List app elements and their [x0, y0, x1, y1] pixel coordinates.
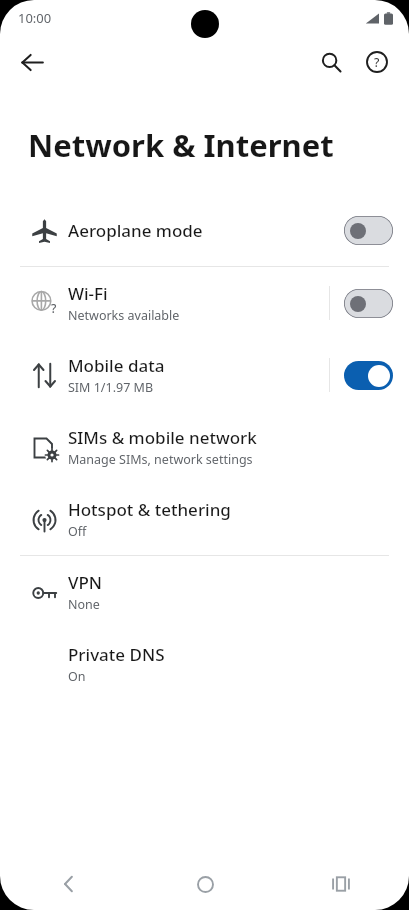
staticText: Off: [68, 523, 87, 540]
staticText: Private DNS: [68, 643, 165, 666]
staticText: Aeroplane mode: [68, 219, 203, 242]
staticText: Networks available: [68, 307, 180, 324]
button[interactable]: Home: [137, 858, 273, 910]
button[interactable]: Back: [0, 858, 137, 910]
staticText: On: [68, 668, 86, 685]
button[interactable]: Private DNS: [0, 628, 409, 700]
button[interactable]: Hotspot & tethering: [0, 483, 409, 555]
staticText: VPN: [68, 571, 103, 594]
button[interactable]: Back: [10, 40, 54, 84]
staticText: Wi-Fi: [68, 282, 108, 305]
button[interactable]: ?: [0, 267, 409, 339]
staticText: Mobile data: [68, 354, 165, 377]
button[interactable]: Off: [344, 289, 393, 318]
staticText: Manage SIMs, network settings: [68, 451, 253, 468]
button[interactable]: Help: [355, 40, 399, 84]
staticText: SIM 1/1.97 MB: [68, 379, 154, 396]
button[interactable]: VPN: [0, 556, 409, 628]
button[interactable]: Recent apps: [273, 858, 409, 910]
staticText: None: [68, 596, 100, 613]
staticText: ?: [51, 300, 57, 316]
button[interactable]: Off: [344, 216, 393, 245]
button[interactable]: Aeroplane mode: [0, 194, 409, 266]
staticText: Network & Internet: [28, 124, 334, 166]
button[interactable]: SIMs & mobile network: [0, 411, 409, 483]
button[interactable]: Search: [309, 40, 353, 84]
staticText: 10:00: [18, 9, 52, 27]
staticText: Hotspot & tethering: [68, 498, 231, 521]
button[interactable]: On: [344, 361, 393, 390]
staticText: SIMs & mobile network: [68, 426, 257, 449]
staticText: ?: [374, 54, 380, 70]
button[interactable]: Mobile data: [0, 339, 409, 411]
